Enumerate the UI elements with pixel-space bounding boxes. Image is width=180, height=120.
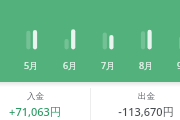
staticText: 6月 [54,59,86,71]
button[interactable]: 4月 [0,0,180,82]
button[interactable]: 6月 [54,59,86,71]
staticText: 出金 [138,91,155,102]
button[interactable]: 5月 [15,59,47,71]
staticText: 7月 [92,59,124,71]
button[interactable]: 7月 [92,59,124,71]
staticText: 入金 [27,91,44,102]
staticText: 5月 [15,59,47,71]
staticText: 9月 [168,59,180,71]
staticText: +71,063円 [9,104,61,119]
button[interactable]: 入金 [0,88,80,120]
button[interactable]: 出金 [101,88,180,120]
staticText: -113,670円 [118,104,174,119]
button[interactable]: 9月 [168,59,180,71]
staticText: 8月 [130,59,162,71]
button[interactable]: 8月 [130,59,162,71]
